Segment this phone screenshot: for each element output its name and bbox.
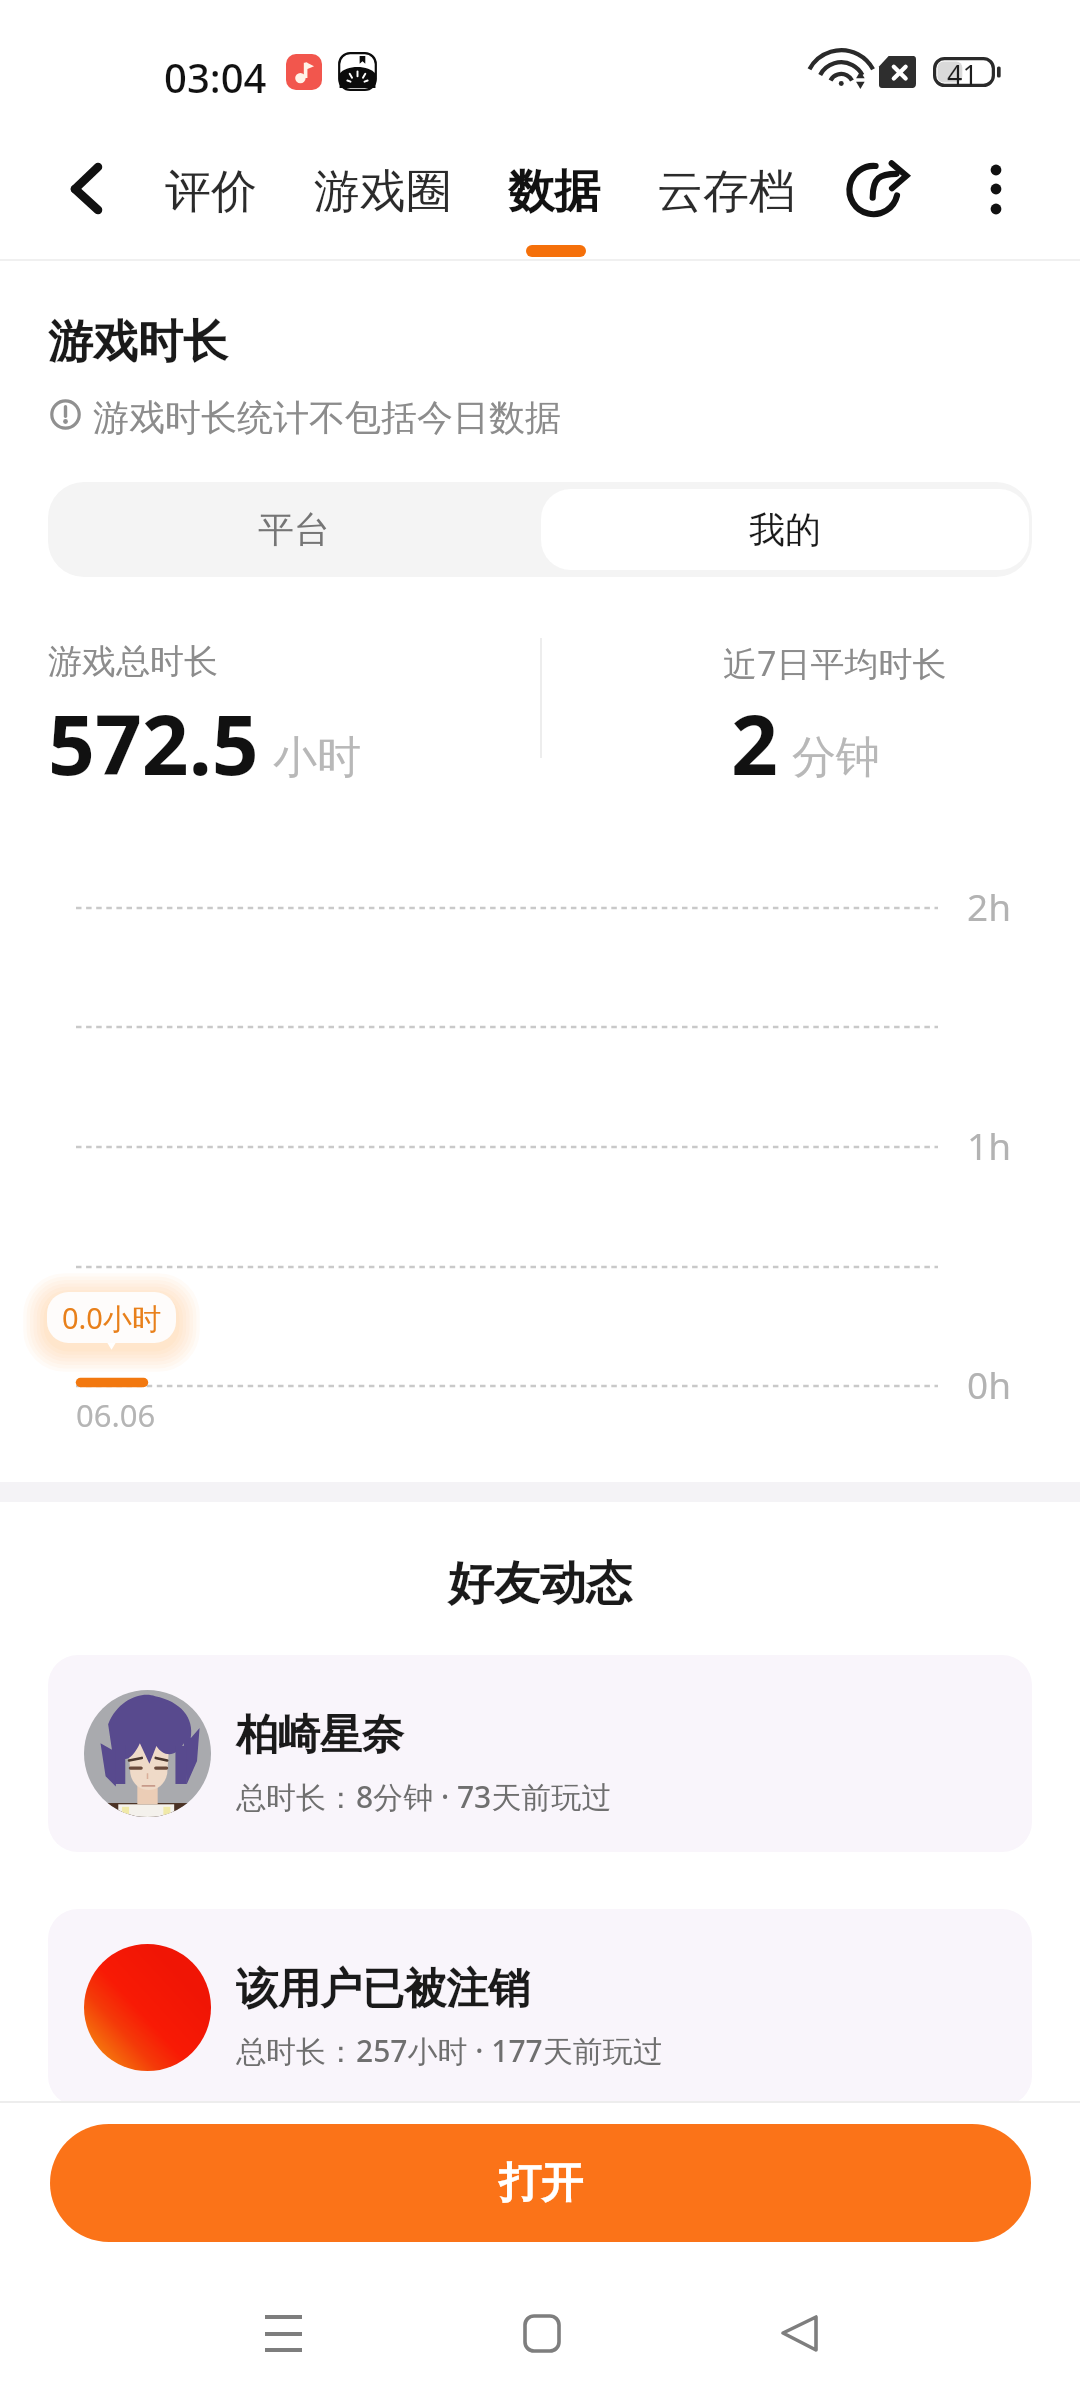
staticText: 总时长：8分钟 · 73天前玩过: [236, 1776, 612, 1817]
staticText: 平台: [258, 507, 330, 552]
button[interactable]: 评价: [153, 155, 269, 229]
button[interactable]: 柏崎星奈: [48, 1655, 1032, 1852]
staticText: 06.06: [76, 1394, 156, 1436]
staticText: 41: [947, 56, 978, 86]
button[interactable]: 游戏圈: [302, 155, 464, 229]
staticText: 该用户已被注销: [236, 1963, 530, 2016]
staticText: 572.5: [48, 687, 259, 799]
staticText: 2: [731, 687, 778, 799]
staticText: 游戏总时长: [48, 640, 218, 683]
button[interactable]: 云存档: [645, 155, 807, 229]
staticText: 近7日平均时长: [723, 640, 947, 686]
staticText: 游戏时长: [48, 314, 228, 371]
staticText: 小时: [273, 730, 361, 785]
staticText: 好友动态: [0, 1555, 1080, 1613]
staticText: 0h: [967, 1359, 1012, 1409]
staticText: 1h: [967, 1120, 1012, 1170]
staticText: 0.0小时: [62, 1298, 161, 1338]
button[interactable]: 打开: [50, 2124, 1031, 2242]
staticText: 03:04: [164, 50, 267, 104]
staticText: 游戏圈: [314, 163, 452, 221]
button[interactable]: Back: [60, 150, 120, 210]
button[interactable]: Recent apps: [233, 2283, 333, 2383]
button[interactable]: 数据: [496, 155, 612, 229]
staticText: 我的: [749, 507, 821, 552]
staticText: 游戏时长统计不包括今日数据: [93, 395, 561, 440]
staticText: 柏崎星奈: [236, 1709, 404, 1762]
staticText: 总时长：257小时 · 177天前玩过: [236, 2030, 663, 2071]
button[interactable]: Back: [750, 2283, 850, 2383]
staticText: 评价: [165, 163, 257, 221]
staticText: 打开: [499, 2157, 583, 2210]
button[interactable]: Share: [844, 149, 916, 221]
button[interactable]: More options: [965, 155, 1027, 217]
staticText: 数据: [508, 163, 600, 221]
button[interactable]: 平台: [48, 482, 540, 577]
button[interactable]: 我的: [541, 489, 1029, 570]
staticText: 分钟: [792, 730, 880, 785]
button[interactable]: Home: [490, 2283, 590, 2383]
staticText: 云存档: [657, 163, 795, 221]
staticText: 2h: [967, 881, 1012, 931]
button[interactable]: 该用户已被注销: [48, 1909, 1032, 2106]
